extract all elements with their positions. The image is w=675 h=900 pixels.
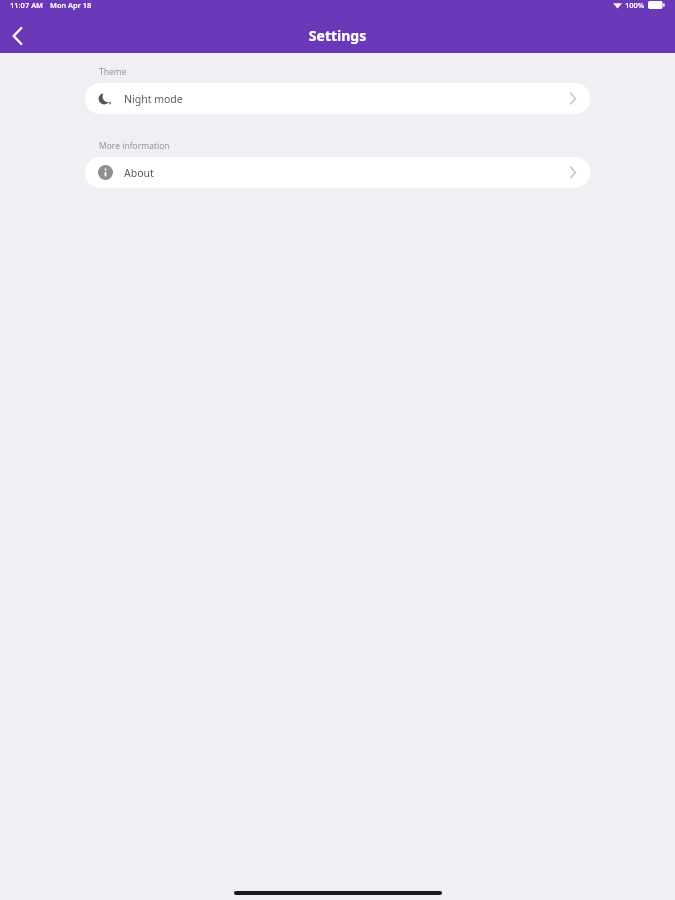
- staticText: More information: [99, 140, 170, 152]
- staticText: Settings: [0, 26, 675, 45]
- button[interactable]: About: [85, 157, 590, 188]
- staticText: 11:07 AM: [10, 0, 43, 10]
- staticText: Theme: [99, 66, 127, 78]
- staticText: About: [124, 166, 154, 180]
- button[interactable]: Night mode: [85, 83, 590, 114]
- staticText: Night mode: [124, 92, 183, 106]
- staticText: 100%: [625, 0, 645, 10]
- button[interactable]: Back: [0, 19, 34, 53]
- staticText: Mon Apr 18: [50, 0, 92, 10]
